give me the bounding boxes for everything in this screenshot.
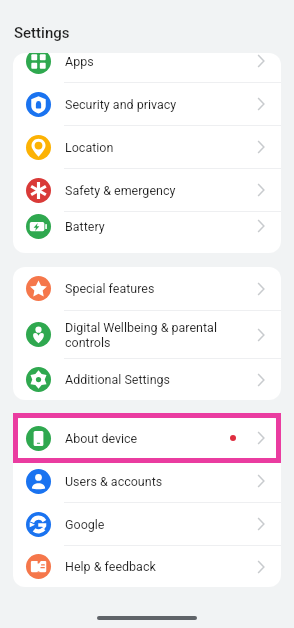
staticText: Digital Wellbeing & parental controls bbox=[65, 320, 257, 350]
staticText: Location bbox=[65, 140, 257, 155]
staticText: Additional Settings bbox=[65, 372, 257, 387]
button[interactable]: Apps bbox=[13, 53, 281, 82]
button[interactable]: Battery bbox=[13, 212, 281, 240]
button[interactable]: Security and privacy bbox=[13, 83, 281, 125]
button[interactable]: Google bbox=[13, 503, 281, 545]
button[interactable]: Digital Wellbeing & parental controls bbox=[13, 311, 281, 358]
staticText: Users & accounts bbox=[65, 474, 257, 489]
button[interactable]: Safety & emergency bbox=[13, 169, 281, 211]
button[interactable]: Additional Settings bbox=[13, 359, 281, 400]
button[interactable]: About device bbox=[13, 417, 281, 459]
staticText: About device bbox=[65, 431, 230, 446]
button[interactable]: Help & feedback bbox=[13, 546, 281, 587]
staticText: Security and privacy bbox=[65, 97, 257, 112]
button[interactable]: Location bbox=[13, 126, 281, 168]
button[interactable]: Users & accounts bbox=[13, 460, 281, 502]
staticText: Battery bbox=[65, 219, 257, 234]
staticText: Safety & emergency bbox=[65, 183, 257, 198]
staticText: Special features bbox=[65, 281, 257, 296]
staticText: Apps bbox=[65, 54, 257, 69]
staticText: Google bbox=[65, 517, 257, 532]
staticText: Help & feedback bbox=[65, 559, 257, 574]
staticText: Settings bbox=[14, 24, 70, 42]
button[interactable]: Special features bbox=[13, 267, 281, 310]
